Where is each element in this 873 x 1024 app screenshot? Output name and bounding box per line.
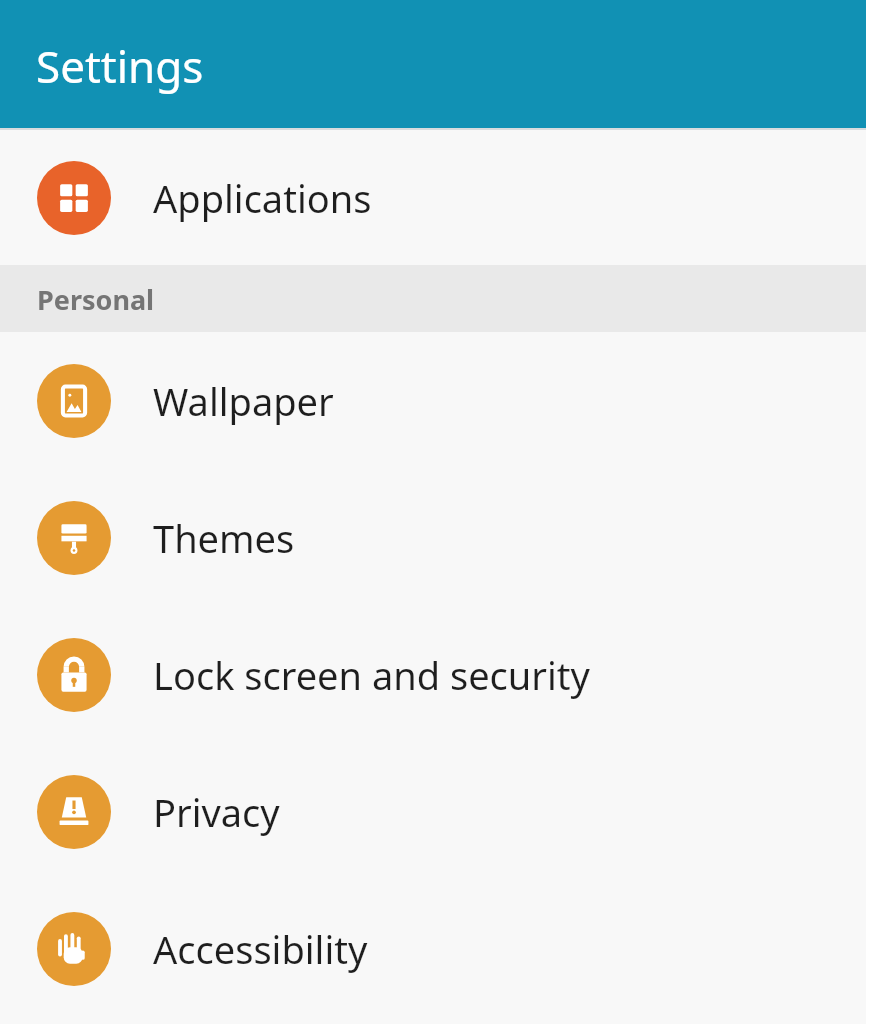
staticText: Accessibility (153, 923, 368, 975)
button[interactable]: Privacy (0, 743, 866, 880)
button[interactable]: Themes (0, 469, 866, 606)
other: Applications (37, 161, 111, 235)
staticText: Personal (37, 281, 155, 318)
other: Themes (37, 501, 111, 575)
other: Lock screen and security (37, 638, 111, 712)
staticText: Settings (36, 36, 204, 96)
other: Accessibility (37, 912, 111, 986)
staticText: Privacy (153, 786, 280, 838)
other: Wallpaper (37, 364, 111, 438)
staticText: Themes (153, 512, 295, 564)
button[interactable]: Wallpaper (0, 332, 866, 469)
staticText: Applications (153, 172, 372, 224)
button[interactable]: Lock screen and security (0, 606, 866, 743)
staticText: Wallpaper (153, 375, 334, 427)
button[interactable]: Applications (0, 130, 866, 265)
staticText: Lock screen and security (153, 649, 590, 701)
button[interactable]: Accessibility (0, 880, 866, 1017)
other: Privacy (37, 775, 111, 849)
